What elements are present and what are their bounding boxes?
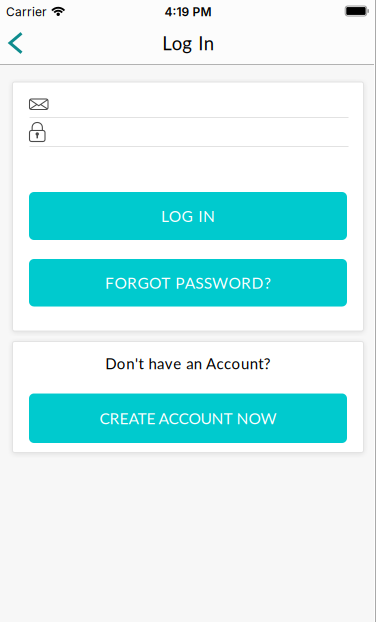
button[interactable]: CREATE ACCOUNT NOW	[29, 393, 347, 443]
button[interactable]: FORGOT PASSWORD?	[29, 259, 347, 306]
staticText: FORGOT PASSWORD?	[105, 273, 271, 292]
button[interactable]: LOG IN	[29, 192, 347, 240]
button[interactable]: Back	[0, 23, 35, 63]
staticText: 4:19 PM	[164, 4, 211, 19]
staticText: Don't have an Account?	[105, 354, 271, 372]
staticText: Log In	[162, 32, 214, 54]
staticText: LOG IN	[161, 207, 215, 225]
staticText: CREATE ACCOUNT NOW	[99, 409, 276, 427]
staticText: Carrier	[6, 4, 47, 19]
